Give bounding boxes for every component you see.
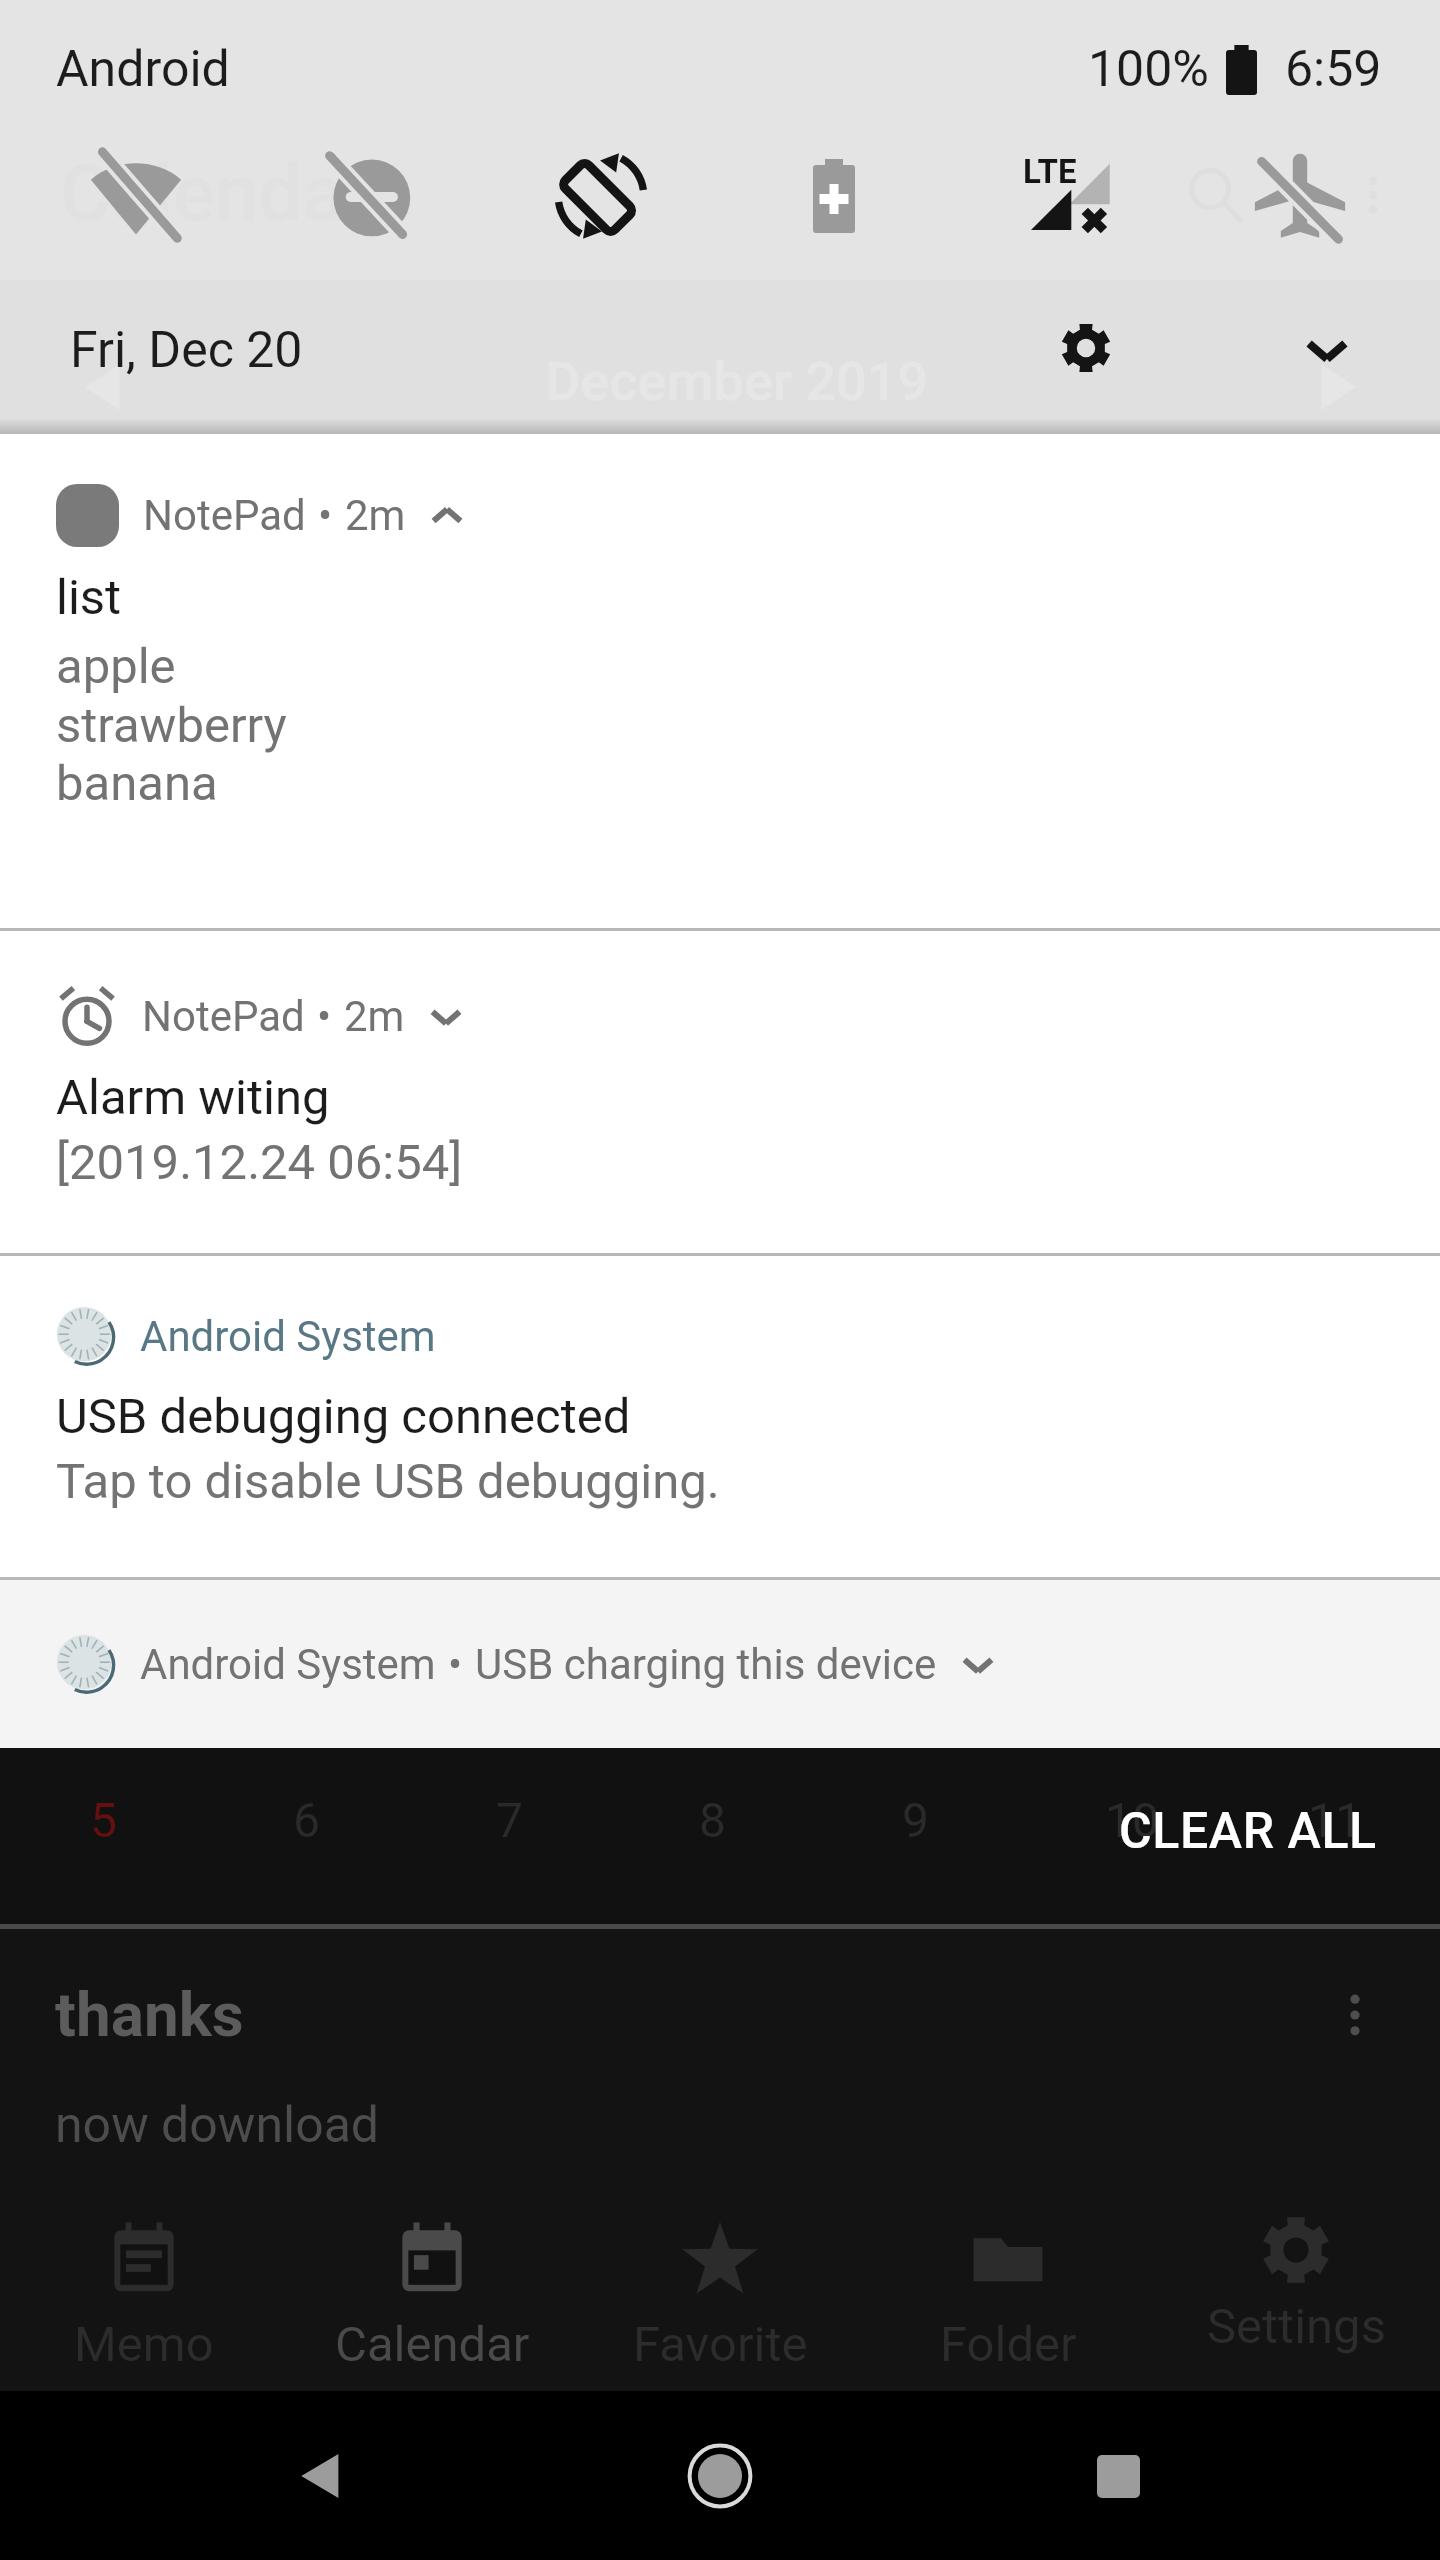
button[interactable]: Folder <box>864 2190 1152 2391</box>
staticText: NotePad <box>142 992 305 1041</box>
staticText: 2m <box>344 992 405 1041</box>
staticText: LTE <box>1023 152 1077 191</box>
staticText: • <box>448 1640 463 1689</box>
button[interactable]: Memo <box>0 2190 288 2391</box>
staticText: Android System <box>140 1640 436 1689</box>
button[interactable]: Home <box>660 2416 780 2536</box>
staticText: 8 <box>699 1792 726 1848</box>
button[interactable]: Back <box>261 2416 381 2536</box>
staticText: Android System <box>140 1312 436 1361</box>
staticText: 5 <box>90 1792 117 1848</box>
button[interactable]: Calendar <box>288 2190 576 2391</box>
staticText: • <box>317 992 332 1041</box>
staticText: 9 <box>902 1792 929 1848</box>
button[interactable]: Android System <box>0 1580 1440 1748</box>
staticText: now download <box>55 2096 380 2155</box>
staticText: Settings <box>1207 2298 1386 2355</box>
button[interactable]: Settings <box>1026 288 1146 408</box>
staticText: 7 <box>496 1792 523 1848</box>
staticText: 11 <box>1308 1792 1362 1848</box>
staticText: Alarm witing <box>56 1069 330 1126</box>
staticText: Calendar <box>335 2316 530 2373</box>
staticText: 6 <box>293 1792 320 1848</box>
button[interactable] <box>717 125 950 266</box>
button[interactable]: Android System <box>0 1256 1440 1577</box>
staticText: Favorite <box>633 2316 808 2373</box>
staticText: list <box>56 569 122 626</box>
button[interactable]: More options <box>1300 1960 1410 2070</box>
button[interactable]: NotePad <box>0 931 1440 1253</box>
staticText: • <box>318 491 333 540</box>
staticText: Android <box>56 40 230 99</box>
button[interactable]: Recent apps <box>1058 2416 1178 2536</box>
staticText: Calendar <box>60 148 373 239</box>
staticText: thanks <box>55 1978 244 2038</box>
button[interactable]: LTE <box>950 125 1183 266</box>
button[interactable] <box>20 125 252 266</box>
staticText: 2m <box>345 491 406 540</box>
button[interactable] <box>1183 125 1416 266</box>
staticText: Tap to disable USB debugging. <box>56 1453 720 1510</box>
staticText: apple strawberry banana <box>56 638 287 812</box>
button[interactable]: NotePad <box>0 434 1440 928</box>
staticText: Fri, Dec 20 <box>70 321 303 380</box>
button[interactable]: Expand quick settings <box>1267 289 1387 409</box>
button[interactable]: CLEAR ALL <box>1047 1743 1440 1919</box>
staticText: USB charging this device <box>475 1640 937 1689</box>
staticText: USB debugging connected <box>56 1388 631 1445</box>
staticText: 10 <box>1105 1792 1159 1848</box>
staticText: 100% <box>1088 40 1209 99</box>
button[interactable] <box>484 125 717 266</box>
button[interactable]: Settings <box>1152 2190 1440 2391</box>
button[interactable] <box>252 125 484 266</box>
staticText: [2019.12.24 06:54] <box>56 1134 463 1191</box>
staticText: CLEAR ALL <box>1119 1802 1377 1861</box>
staticText: NotePad <box>143 491 306 540</box>
button[interactable]: Favorite <box>576 2190 864 2391</box>
staticText: 6:59 <box>1285 40 1382 99</box>
staticText: Folder <box>940 2316 1077 2373</box>
staticText: Memo <box>74 2316 214 2373</box>
